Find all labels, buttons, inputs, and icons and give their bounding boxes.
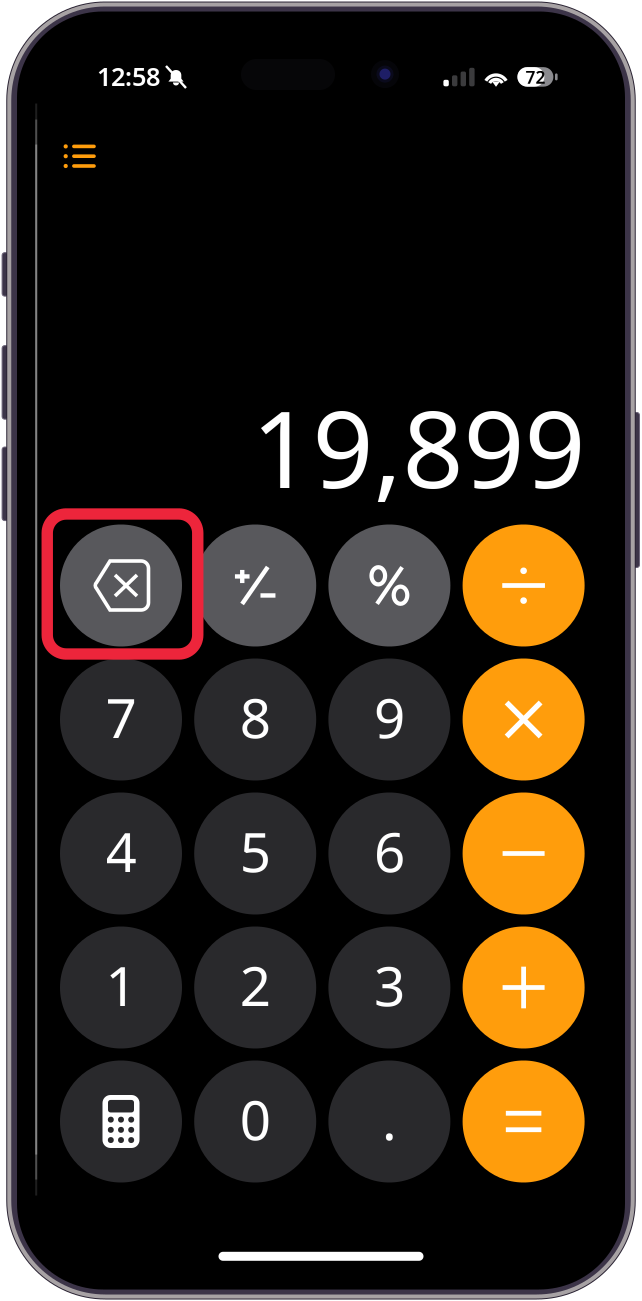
staticText: . — [382, 1083, 397, 1155]
button[interactable]: 5 — [194, 792, 316, 914]
staticText: 3 — [374, 949, 405, 1021]
staticText: 2 — [240, 949, 271, 1021]
button[interactable]: Divide — [463, 524, 585, 646]
button[interactable]: Equals — [463, 1060, 585, 1182]
staticText: 12:58 — [97, 59, 160, 93]
button[interactable]: 7 — [60, 658, 182, 780]
button[interactable]: . — [328, 1060, 450, 1182]
button[interactable]: 9 — [328, 658, 450, 780]
button[interactable]: Minus — [463, 792, 585, 914]
staticText: 0 — [240, 1083, 271, 1155]
staticText: 1 — [105, 949, 136, 1021]
staticText: 8 — [240, 681, 271, 753]
staticText: 5 — [240, 815, 271, 887]
button[interactable]: History — [44, 127, 116, 185]
staticText: 6 — [374, 815, 405, 887]
button[interactable]: 2 — [194, 926, 316, 1048]
button[interactable]: 3 — [328, 926, 450, 1048]
button[interactable]: Delete — [60, 524, 182, 646]
button[interactable]: 1 — [60, 926, 182, 1048]
button[interactable]: 0 — [194, 1060, 316, 1182]
staticText: 7 — [105, 681, 136, 753]
button[interactable]: Multiply — [463, 658, 585, 780]
button[interactable]: Toggle sign — [194, 524, 316, 646]
staticText: 72 — [525, 65, 545, 88]
staticText: 4 — [105, 815, 136, 887]
button[interactable]: 8 — [194, 658, 316, 780]
button[interactable]: 6 — [328, 792, 450, 914]
staticText: 9 — [374, 681, 405, 753]
button[interactable]: Plus — [463, 926, 585, 1048]
staticText: 19,899 — [251, 376, 585, 517]
button[interactable]: 4 — [60, 792, 182, 914]
button[interactable]: Calculator — [60, 1060, 182, 1182]
button[interactable]: Percent — [328, 524, 450, 646]
